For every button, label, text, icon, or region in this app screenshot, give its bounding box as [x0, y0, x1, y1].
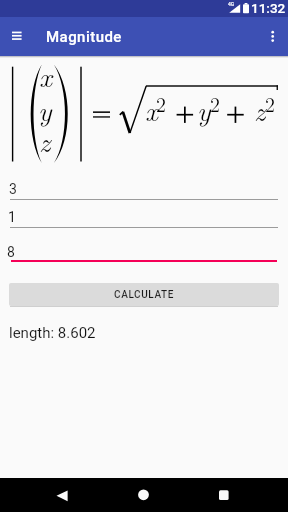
button[interactable]: 3 [0, 177, 288, 205]
button[interactable] [48, 481, 76, 509]
button[interactable] [130, 481, 158, 509]
staticText: x [145, 89, 158, 129]
staticText: 8 [7, 244, 15, 260]
staticText: 2 [156, 89, 166, 117]
staticText: CALCULATE [114, 289, 175, 301]
staticText: 1 [8, 209, 16, 225]
staticText: 2 [265, 89, 275, 117]
staticText: z [254, 89, 266, 129]
button[interactable] [6, 26, 28, 48]
staticText: y [38, 89, 52, 129]
staticText: 3 [9, 181, 17, 197]
staticText: 11:32 [251, 0, 286, 16]
button[interactable] [210, 481, 238, 509]
staticText: length: 8.602 [9, 324, 96, 342]
staticText: 2 [210, 89, 220, 117]
staticText: Magnitude [46, 28, 122, 46]
button[interactable]: 1 [0, 205, 288, 233]
staticText: y [197, 89, 211, 129]
staticText: z [39, 120, 51, 160]
button[interactable]: CALCULATE [9, 283, 279, 306]
button[interactable] [262, 26, 284, 48]
staticText: 4G [228, 1, 235, 7]
button[interactable]: 8 [0, 237, 288, 265]
staticText: x [39, 55, 52, 95]
